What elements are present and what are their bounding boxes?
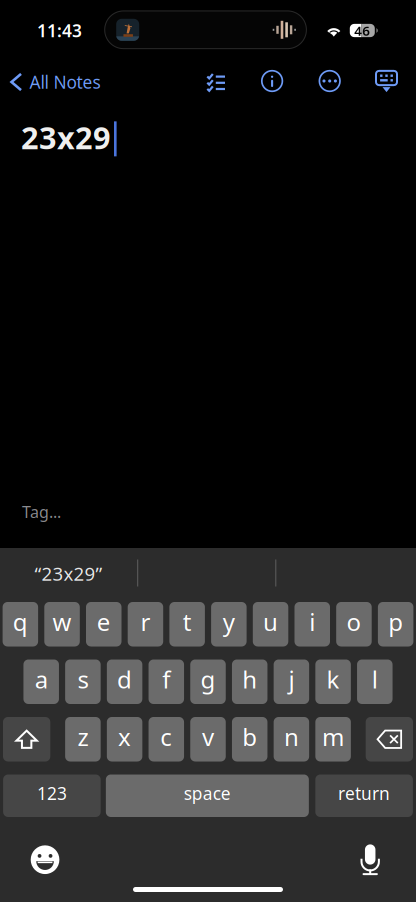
staticText: l: [372, 663, 378, 695]
staticText: j: [288, 663, 294, 695]
button[interactable]: More: [310, 63, 349, 101]
button[interactable]: r: [128, 602, 163, 646]
button[interactable]: Delete: [366, 717, 413, 761]
button[interactable]: space: [106, 774, 309, 817]
button[interactable]: k: [315, 659, 351, 704]
staticText: q: [13, 606, 28, 638]
button[interactable]: c: [149, 717, 184, 761]
button[interactable]: Checklist: [197, 64, 235, 99]
button[interactable]: Shift: [3, 717, 50, 761]
staticText: m: [322, 721, 344, 753]
button[interactable]: i: [294, 602, 330, 646]
staticText: All Notes: [29, 70, 100, 93]
staticText: z: [77, 721, 88, 753]
staticText: t: [183, 606, 192, 638]
button[interactable]: d: [107, 659, 142, 704]
button[interactable]: return: [315, 774, 413, 817]
button[interactable]: b: [232, 717, 267, 761]
button[interactable]: a: [23, 659, 59, 704]
button[interactable]: Hide Keyboard: [367, 62, 406, 102]
button[interactable]: f: [149, 659, 184, 704]
button[interactable]: w: [44, 602, 80, 646]
staticText: 46: [354, 22, 370, 39]
button[interactable]: n: [274, 717, 309, 761]
button[interactable]: g: [190, 659, 226, 704]
staticText: w: [53, 606, 72, 638]
staticText: v: [202, 721, 214, 753]
button[interactable]: Info: [253, 63, 291, 101]
staticText: s: [77, 663, 88, 695]
staticText: “23x29”: [34, 561, 102, 586]
button[interactable]: “23x29”: [0, 556, 137, 594]
staticText: e: [97, 606, 111, 638]
staticText: b: [242, 721, 257, 753]
button[interactable]: l: [357, 659, 392, 704]
button[interactable]: p: [378, 602, 413, 646]
staticText: n: [284, 721, 299, 753]
button[interactable]: j: [274, 659, 309, 704]
staticText: k: [327, 663, 340, 695]
staticText: x: [118, 721, 131, 753]
staticText: i: [309, 606, 315, 638]
staticText: r: [140, 606, 150, 638]
button[interactable]: u: [253, 602, 288, 646]
staticText: a: [35, 663, 48, 695]
button[interactable]: s: [65, 659, 101, 704]
staticText: return: [338, 782, 390, 805]
button[interactable]: t: [169, 602, 205, 646]
staticText: Tag...: [22, 501, 61, 522]
staticText: 123: [37, 782, 67, 805]
staticText: h: [242, 663, 257, 695]
staticText: d: [117, 663, 132, 695]
staticText: f: [162, 663, 170, 695]
staticText: space: [184, 782, 231, 805]
staticText: c: [160, 721, 172, 753]
button[interactable]: 123: [3, 774, 101, 817]
button[interactable]: Emoji: [20, 834, 70, 885]
button[interactable]: All Notes: [0, 64, 108, 99]
staticText: u: [263, 606, 278, 638]
staticText: 23x29: [21, 117, 111, 158]
staticText: o: [346, 606, 361, 638]
staticText: g: [200, 663, 215, 695]
button[interactable]: o: [336, 602, 372, 646]
button[interactable]: m: [315, 717, 351, 761]
staticText: y: [223, 606, 235, 638]
button[interactable]: q: [3, 602, 38, 646]
staticText: p: [388, 606, 403, 638]
button[interactable]: z: [65, 717, 101, 761]
button[interactable]: e: [86, 602, 121, 646]
button[interactable]: v: [190, 717, 226, 761]
button[interactable]: x: [107, 717, 142, 761]
staticText: 11:43: [37, 19, 82, 42]
button[interactable]: y: [211, 602, 247, 646]
button[interactable]: Dictate: [349, 833, 391, 886]
button[interactable]: h: [232, 659, 267, 704]
